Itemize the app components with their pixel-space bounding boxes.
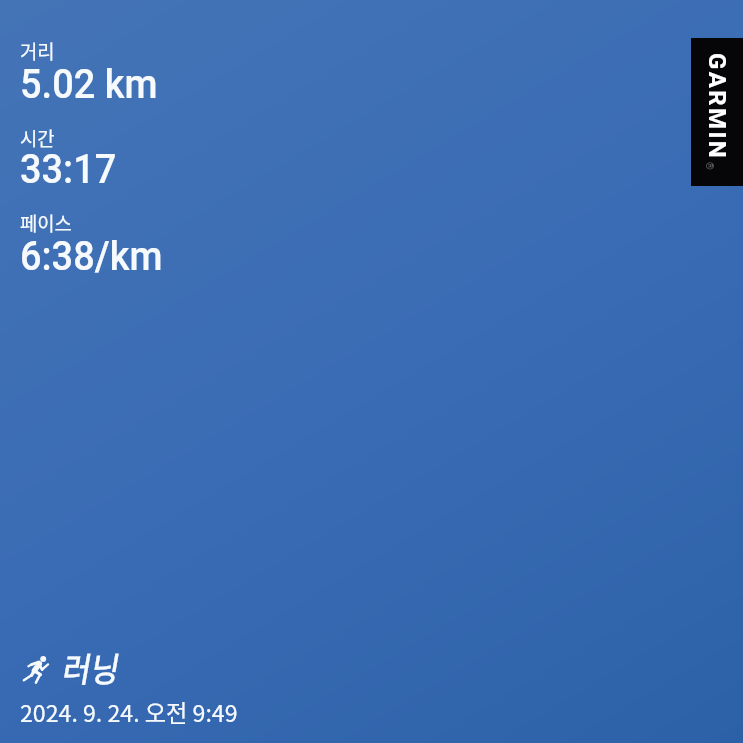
other: 러닝 활동 [23, 656, 49, 686]
button[interactable]: GARMIN [691, 38, 743, 186]
button[interactable]: 러닝 2024. 9. 24. 오전 9:49 [16, 642, 276, 734]
button[interactable] [16, 30, 276, 86]
button[interactable] [16, 202, 276, 258]
button[interactable] [16, 117, 276, 173]
